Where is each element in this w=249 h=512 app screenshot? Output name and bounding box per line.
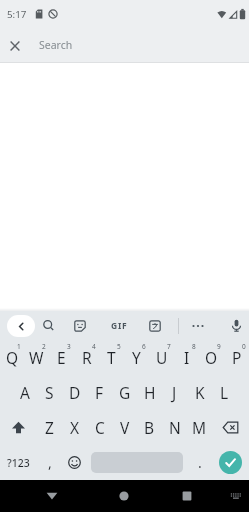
button[interactable]: C: [87, 410, 112, 445]
button[interactable]: [173, 480, 201, 512]
button[interactable]: [62, 445, 87, 480]
button[interactable]: [0, 410, 37, 445]
staticText: O: [205, 347, 218, 368]
button[interactable]: E: [49, 340, 74, 375]
staticText: H: [144, 382, 156, 403]
button[interactable]: ?123: [0, 445, 37, 480]
button[interactable]: [142, 311, 168, 340]
staticText: ?123: [7, 456, 30, 470]
button[interactable]: GIF: [104, 311, 134, 340]
button[interactable]: [212, 445, 249, 480]
staticText: 3: [67, 342, 71, 351]
button[interactable]: G: [112, 375, 137, 410]
staticText: C: [95, 417, 105, 438]
button[interactable]: [223, 311, 249, 340]
button[interactable]: M: [187, 410, 212, 445]
button[interactable]: [38, 480, 66, 512]
staticText: 5: [117, 342, 121, 351]
button[interactable]: Z: [37, 410, 62, 445]
staticText: J: [172, 382, 177, 403]
staticText: R: [82, 347, 92, 368]
button[interactable]: D: [62, 375, 87, 410]
button[interactable]: T: [99, 340, 124, 375]
button[interactable]: Y: [124, 340, 149, 375]
button[interactable]: J: [162, 375, 187, 410]
staticText: V: [120, 417, 130, 438]
button[interactable]: L: [212, 375, 237, 410]
button[interactable]: H: [137, 375, 162, 410]
button[interactable]: B: [137, 410, 162, 445]
staticText: GIF: [111, 320, 128, 332]
staticText: 4: [92, 342, 96, 351]
button[interactable]: U: [149, 340, 174, 375]
button[interactable]: I: [174, 340, 199, 375]
button[interactable]: R: [74, 340, 99, 375]
button[interactable]: Q: [0, 340, 24, 375]
staticText: D: [69, 382, 81, 403]
staticText: G: [119, 382, 131, 403]
staticText: N: [169, 417, 181, 438]
button[interactable]: [87, 445, 187, 480]
button[interactable]: [110, 480, 138, 512]
button[interactable]: V: [112, 410, 137, 445]
button[interactable]: ,: [37, 445, 62, 480]
button[interactable]: F: [87, 375, 112, 410]
staticText: A: [20, 382, 30, 403]
button[interactable]: O: [199, 340, 224, 375]
staticText: 8: [192, 342, 196, 351]
staticText: P: [232, 347, 242, 368]
staticText: Q: [6, 347, 19, 368]
button[interactable]: .: [187, 445, 212, 480]
staticText: S: [45, 382, 54, 403]
staticText: Z: [45, 417, 54, 438]
staticText: Y: [132, 347, 141, 368]
button[interactable]: W: [24, 340, 49, 375]
button[interactable]: X: [62, 410, 87, 445]
staticText: Search: [39, 38, 73, 52]
staticText: X: [70, 417, 80, 438]
staticText: B: [144, 417, 155, 438]
button[interactable]: [212, 410, 249, 445]
button[interactable]: [35, 311, 61, 340]
button[interactable]: [7, 315, 35, 337]
staticText: 1: [17, 342, 21, 351]
button[interactable]: [225, 480, 247, 512]
button[interactable]: S: [37, 375, 62, 410]
button[interactable]: P: [224, 340, 249, 375]
button[interactable]: [0, 31, 29, 60]
staticText: F: [95, 382, 104, 403]
button[interactable]: A: [12, 375, 37, 410]
staticText: .: [198, 453, 202, 472]
button[interactable]: [67, 311, 93, 340]
staticText: L: [220, 382, 229, 403]
staticText: E: [57, 347, 66, 368]
staticText: W: [29, 347, 44, 368]
button[interactable]: N: [162, 410, 187, 445]
staticText: 5:17: [7, 8, 27, 21]
staticText: T: [107, 347, 116, 368]
staticText: 2: [42, 342, 46, 351]
button[interactable]: [185, 311, 210, 340]
staticText: M: [192, 417, 207, 438]
staticText: 7: [167, 342, 171, 351]
staticText: ,: [48, 453, 52, 472]
staticText: K: [195, 382, 205, 403]
staticText: 0: [242, 342, 246, 351]
staticText: U: [156, 347, 168, 368]
staticText: 9: [217, 342, 221, 351]
button[interactable]: K: [187, 375, 212, 410]
staticText: 6: [142, 342, 146, 351]
staticText: I: [184, 347, 190, 368]
